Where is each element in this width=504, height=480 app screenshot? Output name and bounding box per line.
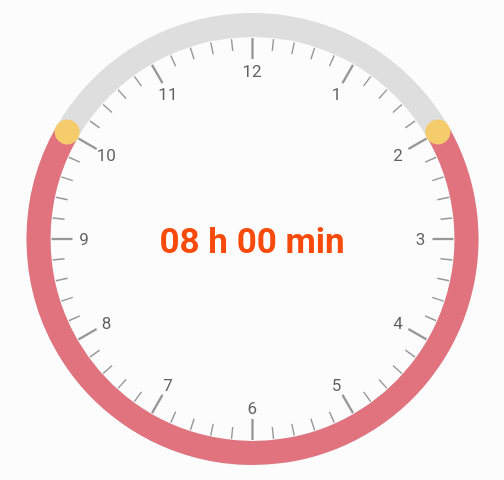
button[interactable]: Wake-up handle, 2 o'clock xyxy=(426,120,451,145)
button[interactable]: Sleep duration dial, 08 h 00 min xyxy=(0,0,504,480)
button[interactable]: Bedtime handle, 10 o'clock xyxy=(55,120,80,145)
